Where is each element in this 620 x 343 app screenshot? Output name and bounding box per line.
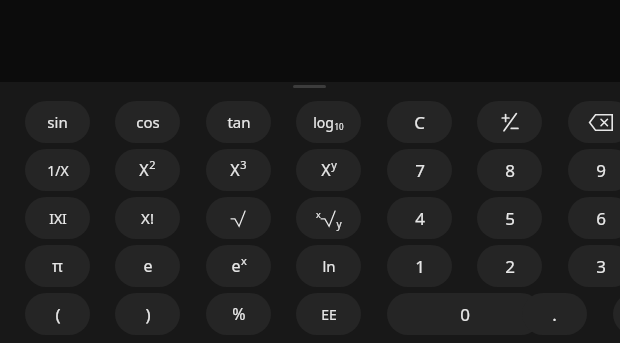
button[interactable]: Nth root	[296, 197, 361, 239]
button[interactable]: Plus minus	[477, 101, 542, 143]
button[interactable]: log	[296, 101, 361, 143]
button[interactable]: X	[296, 149, 361, 191]
button[interactable]: sin	[25, 101, 90, 143]
button[interactable]: 3	[568, 245, 620, 287]
staticText: π	[52, 255, 63, 277]
staticText: 8	[505, 159, 515, 182]
button[interactable]: Backspace	[568, 101, 620, 143]
staticText: 5	[505, 207, 515, 230]
staticText: e	[143, 255, 153, 277]
staticText: e	[231, 255, 241, 277]
button[interactable]: =	[613, 293, 620, 335]
button[interactable]: 7	[387, 149, 452, 191]
staticText: 1/X	[47, 161, 69, 180]
staticText: X!	[141, 208, 154, 228]
staticText: EE	[321, 305, 337, 324]
staticText: 1	[415, 255, 425, 278]
staticText: tan	[227, 112, 251, 132]
staticText: 7	[415, 159, 425, 182]
staticText: x	[316, 208, 321, 220]
staticText: sin	[47, 112, 68, 132]
staticText: 6	[596, 207, 606, 230]
button[interactable]: 2	[477, 245, 542, 287]
button[interactable]: 4	[387, 197, 452, 239]
staticText: IXI	[49, 209, 67, 228]
staticText: %	[232, 303, 246, 325]
staticText: y	[336, 217, 342, 231]
button[interactable]: 9	[568, 149, 620, 191]
button[interactable]: tan	[206, 101, 271, 143]
button[interactable]: 1	[387, 245, 452, 287]
staticText: .	[552, 303, 557, 326]
button[interactable]: %	[206, 293, 271, 335]
staticText: 4	[415, 207, 425, 230]
button[interactable]: ln	[296, 245, 361, 287]
staticText: 2	[505, 255, 515, 278]
button[interactable]: X!	[115, 197, 180, 239]
button[interactable]: 8	[477, 149, 542, 191]
button[interactable]: C	[387, 101, 452, 143]
button[interactable]: (	[25, 293, 90, 335]
button[interactable]: 1/X	[25, 149, 90, 191]
staticText: 10	[334, 121, 344, 132]
button[interactable]: cos	[115, 101, 180, 143]
staticText: 9	[596, 159, 606, 182]
staticText: 0	[460, 303, 470, 326]
staticText: cos	[136, 112, 160, 132]
button[interactable]: )	[115, 293, 180, 335]
staticText: X	[321, 159, 331, 181]
button[interactable]: e	[115, 245, 180, 287]
staticText: log	[313, 113, 334, 132]
button[interactable]: 6	[568, 197, 620, 239]
button[interactable]: π	[25, 245, 90, 287]
staticText: 3	[240, 157, 247, 172]
staticText: y	[331, 157, 337, 172]
staticText: X	[230, 159, 240, 181]
button[interactable]: EE	[296, 293, 361, 335]
staticText: 3	[596, 255, 606, 278]
staticText: (	[55, 303, 61, 326]
staticText: x	[241, 253, 247, 268]
button[interactable]: Square root	[206, 197, 271, 239]
button[interactable]: 0	[387, 293, 542, 335]
staticText: )	[145, 303, 151, 326]
button[interactable]: X	[206, 149, 271, 191]
button[interactable]: .	[522, 293, 587, 335]
staticText: 2	[149, 157, 156, 172]
button[interactable]: e	[206, 245, 271, 287]
button[interactable]: X	[115, 149, 180, 191]
staticText: ln	[322, 256, 336, 276]
staticText: C	[414, 111, 425, 134]
button[interactable]: IXI	[25, 197, 90, 239]
staticText: X	[139, 159, 149, 181]
button[interactable]: 5	[477, 197, 542, 239]
